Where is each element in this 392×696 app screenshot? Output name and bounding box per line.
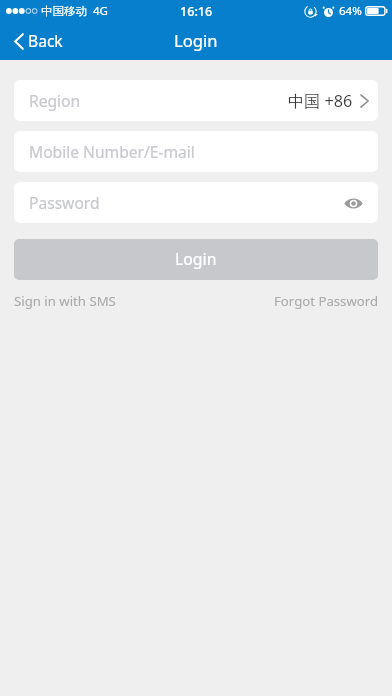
- staticText: 16:16: [180, 3, 213, 20]
- staticText: 中国 +86: [288, 90, 353, 112]
- button[interactable]: Login: [14, 239, 378, 280]
- button[interactable]: Back: [0, 22, 75, 60]
- button[interactable]: Show password: [340, 190, 366, 216]
- button[interactable]: Sign in with SMS: [8, 286, 122, 316]
- staticText: Region: [29, 90, 81, 111]
- staticText: Login: [174, 29, 218, 52]
- staticText: 64%: [339, 3, 362, 19]
- staticText: Password: [29, 192, 100, 213]
- button[interactable]: Region: [14, 80, 378, 121]
- staticText: Sign in with SMS: [14, 292, 116, 310]
- staticText: 中国移动 4G: [41, 3, 108, 19]
- staticText: Back: [28, 30, 63, 51]
- staticText: Mobile Number/E-mail: [29, 141, 195, 162]
- staticText: Login: [175, 248, 217, 270]
- button[interactable]: Mobile Number/E-mail: [14, 131, 378, 172]
- staticText: Forgot Password: [274, 292, 379, 310]
- button[interactable]: Forgot Password: [268, 286, 385, 316]
- button[interactable]: Password: [14, 182, 378, 223]
